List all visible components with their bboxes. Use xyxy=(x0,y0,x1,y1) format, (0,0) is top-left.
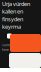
staticText: some caption text here xyxy=(2,42,31,52)
staticText: Urja vürden kallen en finsyden keyrma xyxy=(2,0,30,30)
button[interactable] xyxy=(7,33,12,38)
